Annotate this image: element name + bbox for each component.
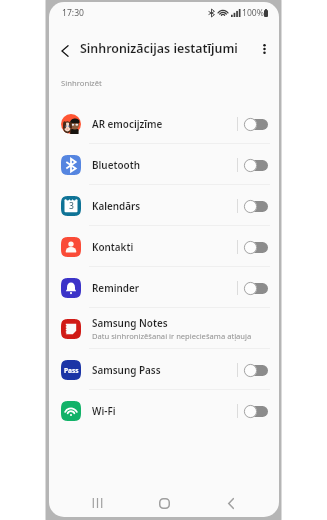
staticText: AR emocijzīme (92, 117, 163, 130)
button[interactable]: Reminder (49, 267, 279, 308)
staticText: Samsung Notes (92, 316, 168, 329)
staticText: Samsung Pass (92, 363, 161, 376)
button[interactable]: Home (150, 489, 178, 517)
button[interactable]: Toggle Kontakti (242, 237, 272, 257)
button[interactable]: Toggle Wi-Fi (242, 401, 272, 421)
staticText: Datu sinhronizēšanai ir nepieciešama atļ… (92, 331, 252, 341)
button[interactable]: Back (53, 38, 76, 61)
staticText: Kalendārs (92, 199, 141, 212)
button[interactable]: Back (217, 489, 245, 517)
staticText: 100% (242, 7, 264, 19)
button[interactable]: AR emocijzīme (49, 103, 279, 144)
staticText: Kontakti (92, 240, 134, 253)
staticText: Reminder (92, 281, 140, 294)
button[interactable]: Toggle AR emocijzīme (242, 114, 272, 134)
staticText: 3 (69, 200, 74, 212)
staticText: 17:30 (62, 7, 84, 19)
button[interactable]: Pass (49, 349, 279, 390)
staticText: Sinhronizēt (61, 78, 102, 88)
button[interactable]: Toggle Kalendārs (242, 196, 272, 216)
button[interactable]: Toggle Bluetooth (242, 155, 272, 175)
button[interactable]: More options (253, 38, 275, 60)
staticText: Bluetooth (92, 158, 140, 171)
staticText: Sinhronizācijas iestatījumi (80, 40, 238, 57)
button[interactable]: Toggle Reminder (242, 278, 272, 298)
button[interactable]: Wi-Fi (49, 390, 279, 431)
button[interactable]: Toggle Samsung Pass (242, 360, 272, 380)
button[interactable]: 3 (49, 185, 279, 226)
button[interactable]: Recents (83, 489, 111, 517)
button[interactable]: Kontakti (49, 226, 279, 267)
staticText: Wi-Fi (92, 404, 116, 417)
button[interactable]: Bluetooth (49, 144, 279, 185)
button[interactable]: Samsung Notes (49, 308, 279, 349)
staticText: Pass (64, 366, 79, 375)
